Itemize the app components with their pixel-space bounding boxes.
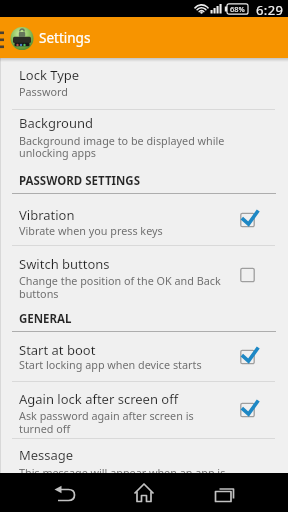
button[interactable]: Settings — [0, 17, 288, 58]
button[interactable] — [0, 333, 288, 381]
button[interactable] — [0, 438, 288, 473]
staticText: Start at boot — [19, 341, 96, 359]
button[interactable] — [0, 246, 288, 306]
staticText: Settings — [39, 29, 91, 47]
staticText: buttons — [19, 286, 59, 301]
button[interactable] — [0, 196, 288, 246]
button[interactable] — [0, 381, 288, 438]
staticText: Change the position of the OK and Back — [19, 273, 221, 288]
staticText: GENERAL — [19, 311, 72, 327]
staticText: unlocking apps — [19, 145, 97, 160]
staticText: 68% — [230, 4, 245, 14]
button[interactable] — [0, 473, 96, 512]
staticText: Background — [19, 114, 93, 132]
staticText: Background image to be displayed while — [19, 133, 225, 148]
staticText: Start locking app when device starts — [19, 357, 202, 372]
staticText: 6:29 — [256, 1, 284, 18]
button[interactable] — [96, 473, 192, 512]
button[interactable] — [0, 60, 288, 110]
staticText: Lock Type — [19, 66, 80, 84]
button[interactable] — [0, 110, 288, 168]
staticText: Again lock after screen off — [19, 390, 179, 408]
staticText: Switch buttons — [19, 255, 110, 273]
staticText: Vibrate when you press keys — [19, 223, 163, 238]
staticText: Ask password again after screen is — [19, 408, 194, 423]
staticText: Vibration — [19, 206, 75, 224]
button[interactable] — [192, 473, 288, 512]
staticText: Password — [19, 84, 68, 99]
staticText: turned off — [19, 421, 71, 436]
staticText: PASSWORD SETTINGS — [19, 173, 141, 189]
staticText: Message — [19, 446, 74, 464]
staticText: This message will appear when an app is — [19, 465, 226, 473]
